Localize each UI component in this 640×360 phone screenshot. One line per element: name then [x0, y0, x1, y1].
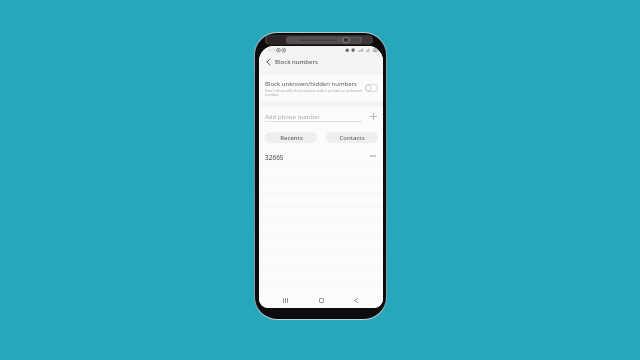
staticText: Don't allow calls from anyone with a pri…: [265, 88, 363, 98]
staticText: 32665: [265, 153, 284, 162]
staticText: Block numbers: [275, 58, 318, 66]
button[interactable]: Block unknown numbers toggle: [363, 83, 379, 93]
button[interactable]: Navigate up: [262, 56, 274, 68]
button[interactable]: Contacts: [326, 132, 378, 143]
button[interactable]: Recent apps: [275, 294, 296, 308]
button[interactable]: Home: [311, 294, 332, 308]
button[interactable]: Add number: [367, 110, 379, 122]
staticText: Add phone number: [265, 113, 321, 121]
button[interactable]: Remove number: [368, 151, 378, 161]
button[interactable]: Block unknown/hidden numbers: [259, 75, 383, 101]
staticText: Recents: [280, 134, 303, 142]
button[interactable]: Back: [346, 294, 367, 308]
button[interactable]: 32665: [259, 149, 383, 163]
staticText: Contacts: [339, 134, 365, 142]
staticText: Block unknown/hidden numbers: [265, 80, 357, 88]
button[interactable]: Recents: [265, 132, 317, 143]
